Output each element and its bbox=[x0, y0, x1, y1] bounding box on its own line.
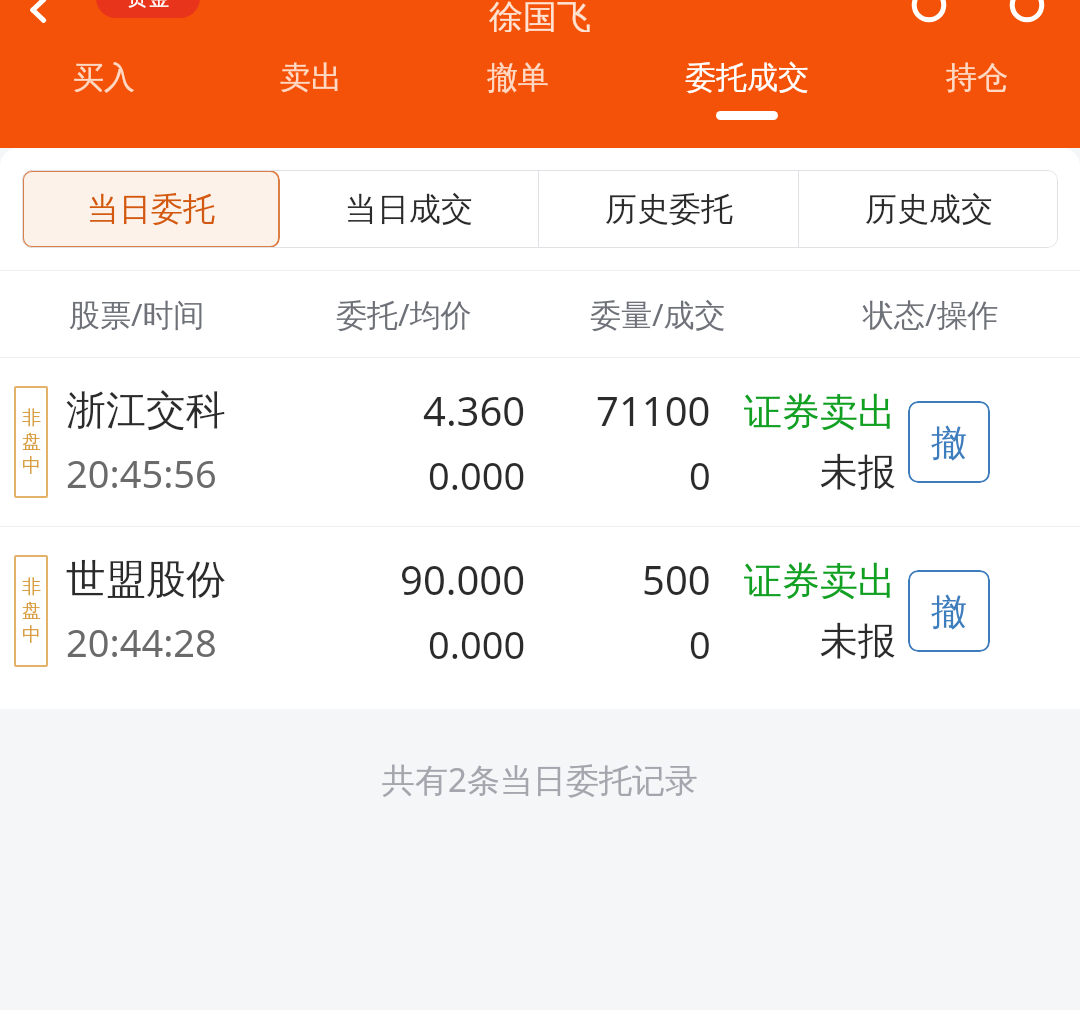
staticText: 历史成交 bbox=[865, 189, 993, 229]
button[interactable]: 当日成交 bbox=[280, 170, 538, 248]
staticText: 撤 bbox=[931, 420, 967, 465]
staticText: 4.360 bbox=[423, 383, 526, 437]
staticText: 中 bbox=[22, 454, 41, 478]
staticText: 状态/操作 bbox=[863, 293, 999, 335]
staticText: 71100 bbox=[596, 383, 711, 437]
staticText: 撤 bbox=[931, 589, 967, 634]
button[interactable]: 非 bbox=[0, 358, 1080, 526]
button[interactable]: 历史委托 bbox=[539, 170, 798, 248]
staticText: 委量/成交 bbox=[590, 293, 726, 335]
button[interactable]: 撤单 bbox=[414, 40, 621, 148]
button[interactable]: 撤单 bbox=[908, 401, 990, 483]
staticText: 卖出 bbox=[280, 58, 342, 97]
staticText: 中 bbox=[22, 623, 41, 647]
button[interactable]: 资金 bbox=[96, 0, 200, 18]
staticText: 0 bbox=[689, 449, 711, 501]
button[interactable]: 更多 bbox=[1004, 0, 1050, 28]
staticText: 世盟股份 bbox=[66, 554, 226, 604]
staticText: 证券卖出 bbox=[744, 557, 896, 605]
staticText: 委托/均价 bbox=[336, 293, 472, 335]
staticText: 当日成交 bbox=[345, 189, 473, 229]
button[interactable]: 撤单 bbox=[908, 570, 990, 652]
button[interactable]: 非 bbox=[0, 527, 1080, 695]
staticText: 委托成交 bbox=[685, 58, 809, 97]
staticText: 历史委托 bbox=[605, 189, 733, 229]
staticText: 当日委托 bbox=[87, 189, 215, 229]
button[interactable]: 委托成交 bbox=[621, 40, 873, 148]
staticText: 20:45:56 bbox=[66, 447, 217, 499]
staticText: 徐国飞 bbox=[489, 0, 591, 32]
button[interactable]: 消息 bbox=[906, 0, 952, 28]
staticText: 资金 bbox=[126, 0, 170, 12]
staticText: 盘 bbox=[22, 430, 41, 454]
button[interactable]: 历史成交 bbox=[799, 170, 1058, 248]
staticText: 500 bbox=[642, 552, 711, 606]
staticText: 0.000 bbox=[428, 618, 526, 670]
staticText: 证券卖出 bbox=[744, 388, 896, 436]
staticText: 未报 bbox=[820, 448, 896, 496]
staticText: 盘 bbox=[22, 599, 41, 623]
staticText: 未报 bbox=[820, 617, 896, 665]
staticText: 浙江交科 bbox=[66, 385, 226, 435]
staticText: 持仓 bbox=[946, 58, 1008, 97]
button[interactable]: 持仓 bbox=[873, 40, 1080, 148]
button[interactable]: 当日委托 bbox=[22, 170, 280, 248]
staticText: 90.000 bbox=[400, 552, 526, 606]
staticText: 0 bbox=[689, 618, 711, 670]
staticText: 共有2条当日委托记录 bbox=[382, 757, 698, 802]
button[interactable]: 买入 bbox=[0, 40, 207, 148]
staticText: 股票/时间 bbox=[69, 293, 205, 335]
button[interactable]: 卖出 bbox=[207, 40, 414, 148]
staticText: 非 bbox=[22, 575, 41, 599]
staticText: 0.000 bbox=[428, 449, 526, 501]
staticText: 非 bbox=[22, 406, 41, 430]
staticText: 撤单 bbox=[487, 58, 549, 97]
staticText: 买入 bbox=[73, 58, 135, 97]
button[interactable]: 返回 bbox=[14, 0, 62, 34]
staticText: 20:44:28 bbox=[66, 616, 217, 668]
